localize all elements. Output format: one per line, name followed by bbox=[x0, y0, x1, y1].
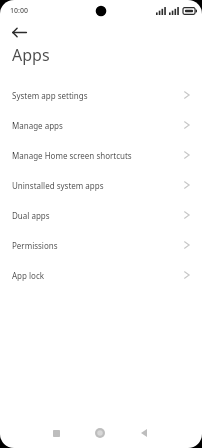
staticText: 10:00 bbox=[10, 6, 28, 16]
staticText: System app settings bbox=[12, 90, 184, 101]
button[interactable]: Back bbox=[132, 421, 156, 445]
button[interactable]: Dual apps bbox=[0, 200, 202, 230]
staticText: App lock bbox=[12, 270, 184, 281]
button[interactable]: System app settings bbox=[0, 80, 202, 110]
button[interactable]: Recent apps bbox=[44, 421, 68, 445]
staticText: Uninstalled system apps bbox=[12, 180, 184, 191]
button[interactable]: Uninstalled system apps bbox=[0, 170, 202, 200]
button[interactable]: Permissions bbox=[0, 230, 202, 260]
button[interactable]: Manage apps bbox=[0, 110, 202, 140]
staticText: Permissions bbox=[12, 240, 184, 251]
staticText: Manage Home screen shortcuts bbox=[12, 150, 184, 161]
staticText: Apps bbox=[12, 44, 50, 66]
button[interactable]: Manage Home screen shortcuts bbox=[0, 140, 202, 170]
button[interactable]: Back bbox=[8, 22, 30, 42]
button[interactable]: App lock bbox=[0, 260, 202, 290]
staticText: Dual apps bbox=[12, 210, 184, 221]
staticText: Manage apps bbox=[12, 120, 184, 131]
button[interactable]: Home bbox=[88, 421, 112, 445]
